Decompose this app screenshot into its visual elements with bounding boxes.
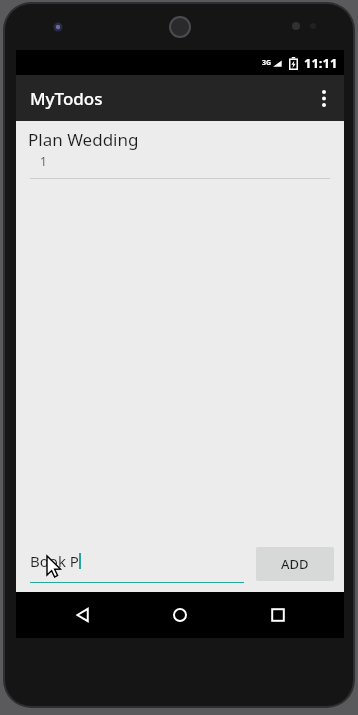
staticText: 3G [262,58,272,68]
staticText: Book P [30,551,79,571]
button[interactable]: Recent apps [247,592,309,638]
staticText: 1 [40,153,47,169]
button[interactable]: More options [304,75,344,121]
button[interactable]: Home [149,592,211,638]
staticText: ADD [281,555,309,573]
staticText: Plan Wedding [28,128,139,151]
staticText: MyTodos [30,87,103,110]
button[interactable]: Back [52,592,114,638]
button[interactable]: ADD [256,547,334,581]
button[interactable]: Book P [30,545,244,583]
button[interactable]: Plan Wedding [16,121,344,179]
staticText: 11:11 [304,54,338,72]
